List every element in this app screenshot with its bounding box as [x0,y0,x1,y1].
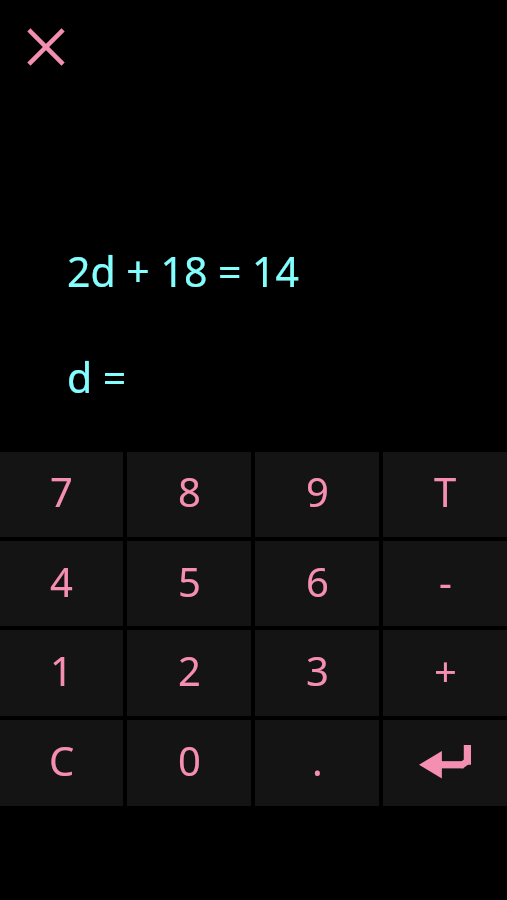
staticText: 3 [306,643,329,697]
staticText: 8 [178,464,201,518]
staticText: - [439,554,452,608]
button[interactable]: T [383,452,507,537]
staticText: T [434,464,457,518]
button[interactable]: 3 [255,630,379,716]
staticText: 6 [306,554,329,608]
button[interactable]: 6 [255,541,379,626]
button[interactable]: - [383,541,507,626]
button[interactable]: 8 [127,452,251,537]
button[interactable]: 4 [0,541,123,626]
button[interactable]: Enter [383,720,507,806]
staticText: 2d + 18 = 14 [67,243,300,299]
staticText: d = [67,349,127,405]
staticText: 9 [306,464,329,518]
staticText: 1 [50,643,73,697]
button[interactable]: C [0,720,123,806]
button[interactable]: 2 [127,630,251,716]
button[interactable]: Close [14,15,78,79]
staticText: C [49,733,75,787]
staticText: 7 [50,464,73,518]
button[interactable]: 7 [0,452,123,537]
staticText: 5 [178,554,201,608]
button[interactable]: 5 [127,541,251,626]
staticText: 4 [50,554,73,608]
staticText: . [312,733,323,787]
staticText: 0 [178,733,201,787]
button[interactable]: 9 [255,452,379,537]
button[interactable]: + [383,630,507,716]
staticText: 2 [178,643,201,697]
staticText: + [434,643,457,697]
button[interactable]: 1 [0,630,123,716]
button[interactable]: . [255,720,379,806]
button[interactable]: 0 [127,720,251,806]
